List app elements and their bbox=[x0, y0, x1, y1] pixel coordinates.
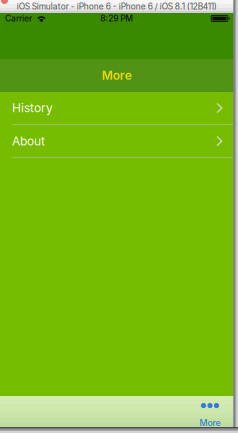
staticText: iOS Simulator - iPhone 6 - iPhone 6 / iO… bbox=[17, 1, 217, 12]
button[interactable]: About bbox=[0, 125, 233, 157]
staticText: More bbox=[102, 68, 132, 83]
staticText: More bbox=[199, 417, 220, 428]
button[interactable]: History bbox=[0, 92, 233, 124]
staticText: 8:29 PM bbox=[100, 13, 133, 24]
staticText: History bbox=[12, 101, 53, 115]
staticText: About bbox=[12, 134, 45, 148]
staticText: Carrier bbox=[5, 13, 32, 24]
button[interactable]: More bbox=[187, 396, 233, 427]
